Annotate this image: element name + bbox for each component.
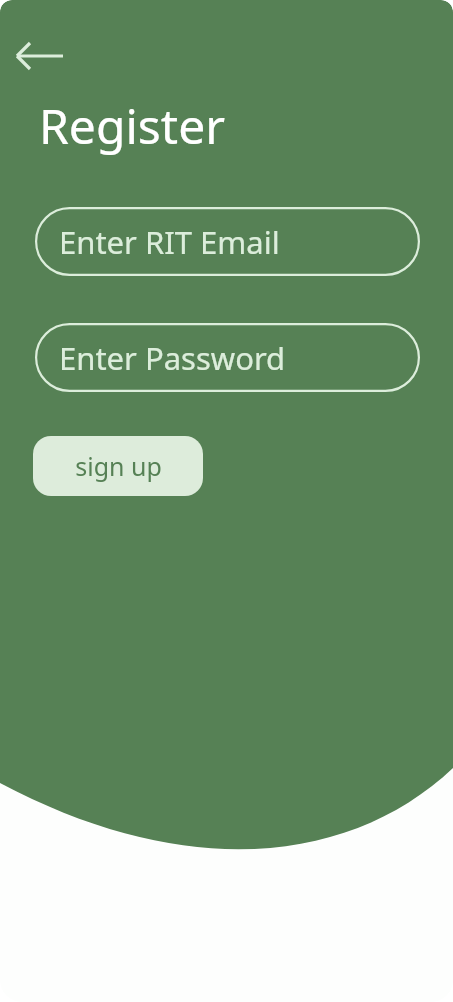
staticText: sign up (75, 449, 162, 483)
button[interactable]: Back (12, 36, 68, 76)
staticText: Register (39, 93, 226, 158)
staticText: Enter RIT Email (59, 221, 280, 263)
button[interactable]: Enter Password (35, 323, 420, 392)
staticText: Enter Password (59, 337, 286, 379)
button[interactable]: Enter RIT Email (35, 207, 420, 276)
button[interactable]: sign up (33, 436, 203, 496)
